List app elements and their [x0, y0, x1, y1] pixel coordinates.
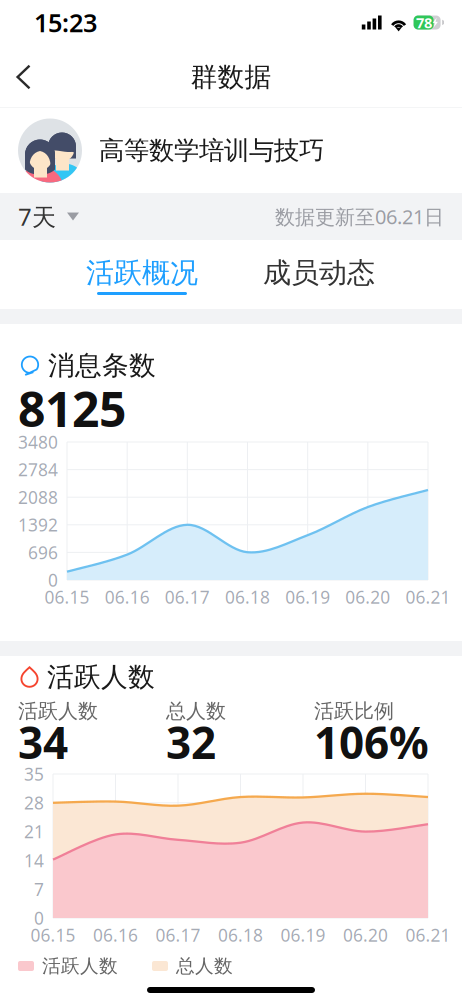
staticText: 14 — [24, 849, 44, 872]
staticText: 8125 — [18, 377, 126, 440]
staticText: 0 — [48, 568, 58, 591]
staticText: 06.21 — [405, 585, 450, 608]
button[interactable]: 7天 — [0, 189, 97, 244]
button[interactable]: Back — [0, 53, 47, 100]
staticText: 总人数 — [166, 699, 226, 723]
staticText: 群数据 — [190, 61, 271, 93]
staticText: 0 — [34, 906, 44, 929]
button[interactable]: 高等数学培训与技巧 — [0, 108, 462, 193]
staticText: 15:23 — [34, 6, 97, 39]
staticText: 06.16 — [93, 923, 138, 946]
staticText: 数据更新至06.21日 — [275, 203, 444, 230]
staticText: 成员动态 — [263, 256, 375, 290]
button[interactable]: 成员动态 — [248, 240, 390, 309]
staticText: 活跃人数 — [42, 954, 118, 977]
staticText: 06.19 — [280, 923, 325, 946]
staticText: 7天 — [18, 201, 56, 232]
staticText: 活跃人数 — [47, 661, 155, 693]
staticText: 7 — [34, 878, 44, 901]
staticText: 06.15 — [30, 923, 75, 946]
staticText: 34 — [18, 713, 68, 771]
staticText: 06.16 — [105, 585, 150, 608]
staticText: 活跃比例 — [314, 699, 394, 723]
staticText: 2784 — [18, 458, 58, 481]
staticText: 06.17 — [155, 923, 200, 946]
staticText: 3480 — [18, 430, 58, 453]
staticText: 1392 — [18, 513, 58, 536]
staticText: 06.21 — [405, 923, 450, 946]
staticText: 78 — [416, 13, 432, 32]
staticText: 06.15 — [44, 585, 89, 608]
staticText: 21 — [24, 820, 44, 843]
button[interactable]: 活跃概况 — [71, 240, 213, 309]
staticText: 32 — [166, 713, 216, 771]
staticText: 2088 — [18, 486, 58, 509]
staticText: 06.18 — [218, 923, 263, 946]
staticText: 活跃概况 — [86, 256, 198, 290]
staticText: 35 — [24, 762, 44, 785]
staticText: 06.20 — [345, 585, 390, 608]
staticText: 活跃人数 — [18, 699, 98, 723]
staticText: 106% — [314, 713, 429, 771]
staticText: 06.18 — [225, 585, 270, 608]
staticText: 06.17 — [165, 585, 210, 608]
staticText: 28 — [24, 791, 44, 814]
staticText: 高等数学培训与技巧 — [99, 135, 324, 166]
staticText: 696 — [28, 541, 58, 564]
staticText: 06.19 — [285, 585, 330, 608]
staticText: 消息条数 — [48, 349, 156, 382]
staticText: 06.20 — [343, 923, 388, 946]
staticText: 总人数 — [176, 954, 233, 977]
